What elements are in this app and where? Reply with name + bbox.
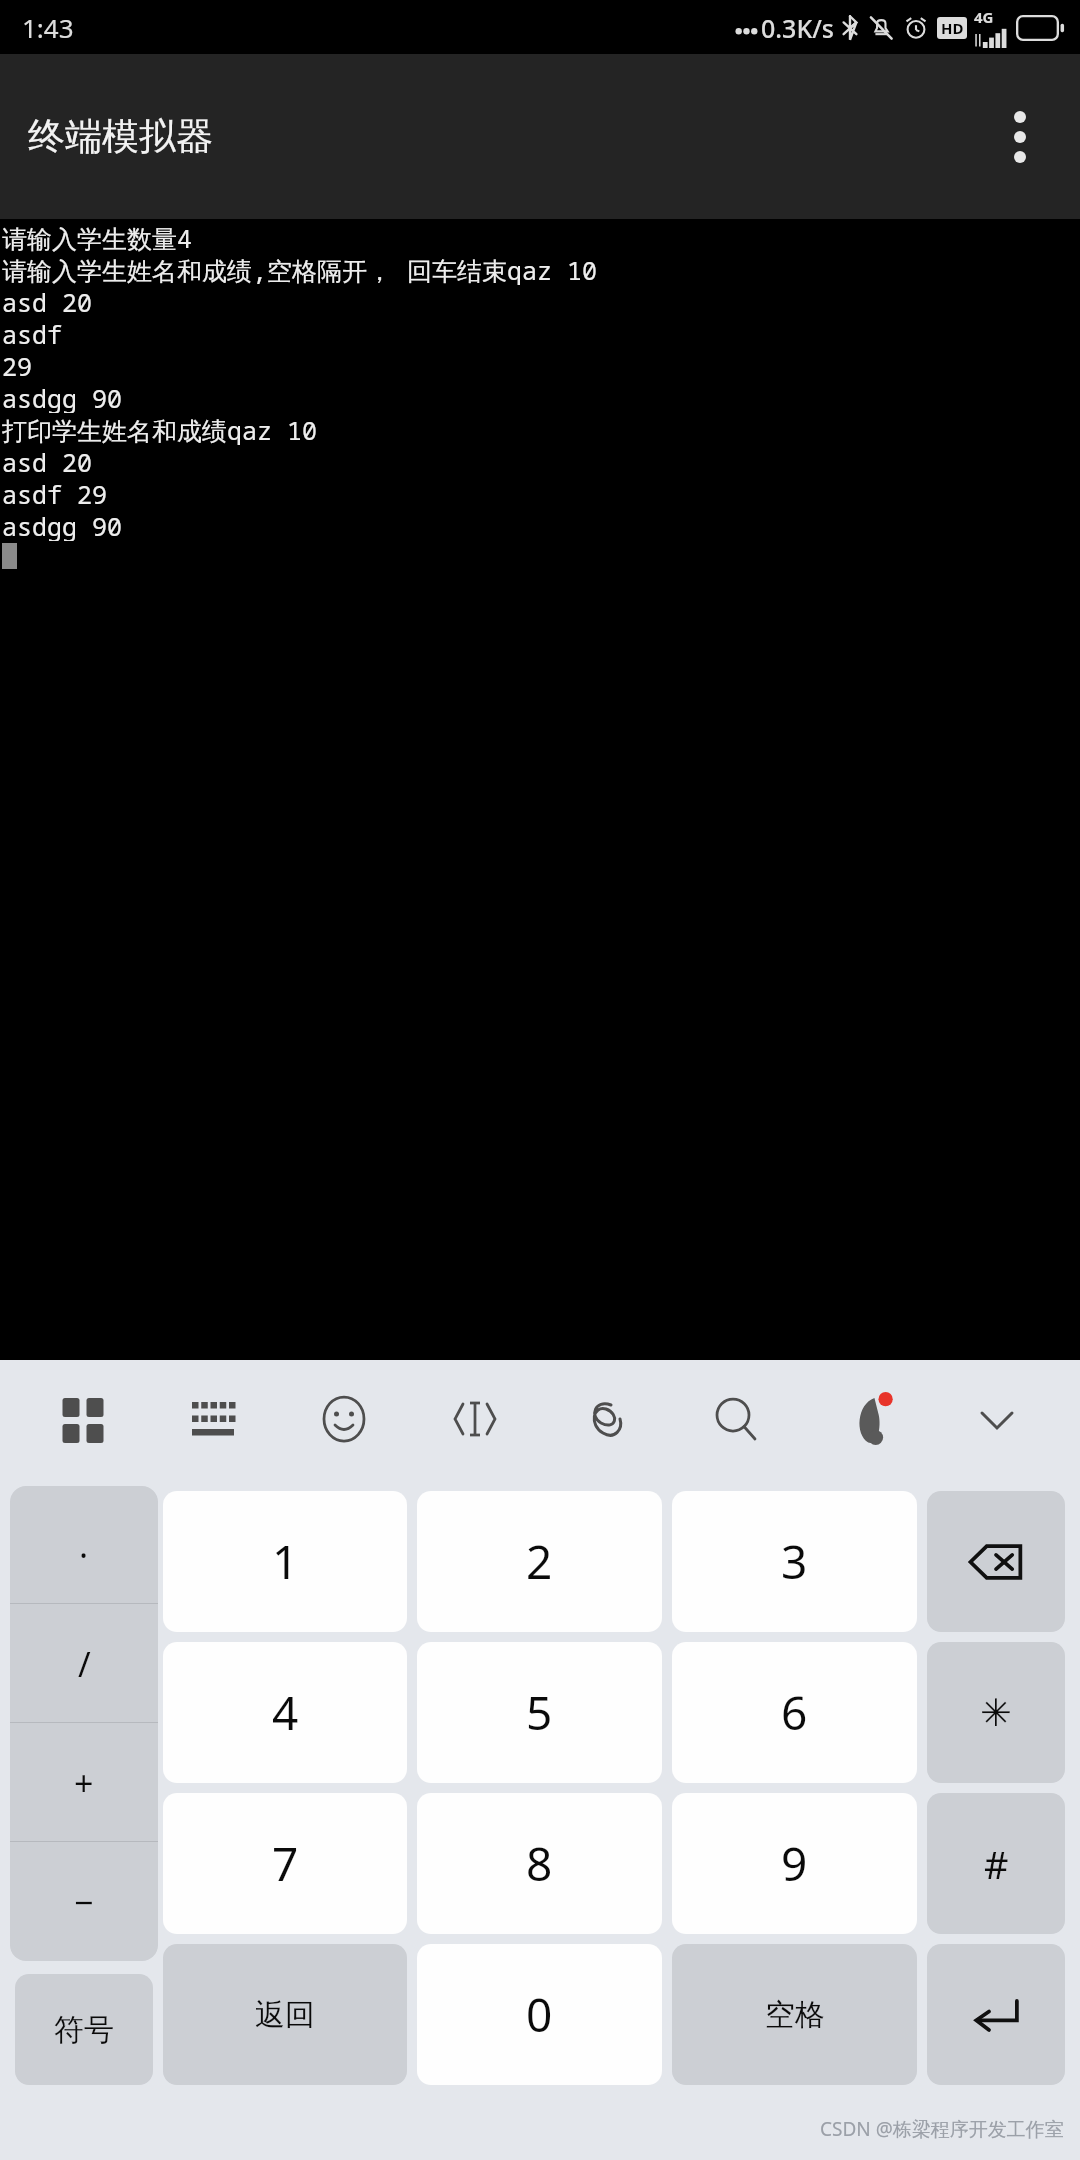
button[interactable]: .: [10, 1486, 158, 1604]
staticText: 7: [272, 1832, 299, 1895]
staticText: 5: [526, 1681, 553, 1744]
button[interactable]: Enter: [927, 1944, 1065, 2085]
staticText: CSDN @栋梁程序开发工作室: [820, 2116, 1064, 2142]
staticText: asd 20: [2, 445, 93, 477]
button[interactable]: 5: [417, 1642, 662, 1783]
button[interactable]: Emoji: [296, 1371, 392, 1467]
staticText: asdgg 90: [2, 381, 123, 413]
button[interactable]: 6: [672, 1642, 917, 1783]
staticText: 6: [781, 1681, 808, 1744]
staticText: 返回: [255, 1996, 315, 2034]
button[interactable]: Cursor move: [427, 1371, 523, 1467]
staticText: 29: [2, 349, 33, 381]
button[interactable]: More options: [982, 99, 1058, 175]
staticText: 请输入学生姓名和成绩,空格隔开， 回车结束qaz 10: [2, 253, 598, 285]
staticText: 0.3K/s: [761, 11, 834, 45]
staticText: +: [74, 1760, 94, 1806]
button[interactable]: 返回: [163, 1944, 407, 2085]
staticText: asdgg 90: [2, 509, 123, 541]
button[interactable]: −: [10, 1842, 158, 1961]
button[interactable]: 9: [672, 1793, 917, 1934]
staticText: 空格: [765, 1996, 825, 2034]
button[interactable]: 符号: [15, 1974, 153, 2085]
staticText: 8: [526, 1832, 553, 1895]
button[interactable]: 3: [672, 1491, 917, 1632]
button[interactable]: /: [10, 1604, 158, 1723]
staticText: 符号: [54, 2011, 114, 2049]
button[interactable]: Night mode: [819, 1371, 915, 1467]
staticText: asdf: [2, 317, 63, 349]
staticText: 4G: [974, 7, 994, 27]
button[interactable]: +: [10, 1723, 158, 1842]
button[interactable]: Search: [688, 1371, 784, 1467]
staticText: −: [74, 1879, 94, 1925]
staticText: /: [78, 1641, 91, 1687]
button[interactable]: ✳: [927, 1642, 1065, 1783]
button[interactable]: #: [927, 1793, 1065, 1934]
button[interactable]: Backspace: [927, 1491, 1065, 1632]
button[interactable]: Hide keyboard: [949, 1371, 1045, 1467]
button[interactable]: 空格: [672, 1944, 917, 2085]
button[interactable]: 2: [417, 1491, 662, 1632]
staticText: 1: [272, 1530, 299, 1593]
staticText: 终端模拟器: [28, 113, 213, 160]
staticText: asdf 29: [2, 477, 108, 509]
staticText: 4: [272, 1681, 299, 1744]
staticText: asd 20: [2, 285, 93, 317]
button[interactable]: Keyboard: [165, 1371, 261, 1467]
button[interactable]: 8: [417, 1793, 662, 1934]
button[interactable]: Clipboard: [557, 1371, 653, 1467]
staticText: 3: [781, 1530, 808, 1593]
staticText: HD: [941, 18, 964, 38]
staticText: .: [79, 1522, 89, 1568]
staticText: ✳: [980, 1691, 1012, 1735]
staticText: 9: [781, 1832, 808, 1895]
staticText: 0: [526, 1983, 553, 2046]
button[interactable]: Keyboard layouts: [35, 1371, 131, 1467]
button[interactable]: 7: [163, 1793, 407, 1934]
button[interactable]: 1: [163, 1491, 407, 1632]
staticText: 1:43: [22, 10, 74, 45]
staticText: #: [984, 1838, 1009, 1890]
button[interactable]: 0: [417, 1944, 662, 2085]
staticText: 2: [526, 1530, 553, 1593]
staticText: 打印学生姓名和成绩qaz 10: [2, 413, 318, 445]
staticText: 请输入学生数量4: [2, 221, 193, 253]
button[interactable]: 4: [163, 1642, 407, 1783]
